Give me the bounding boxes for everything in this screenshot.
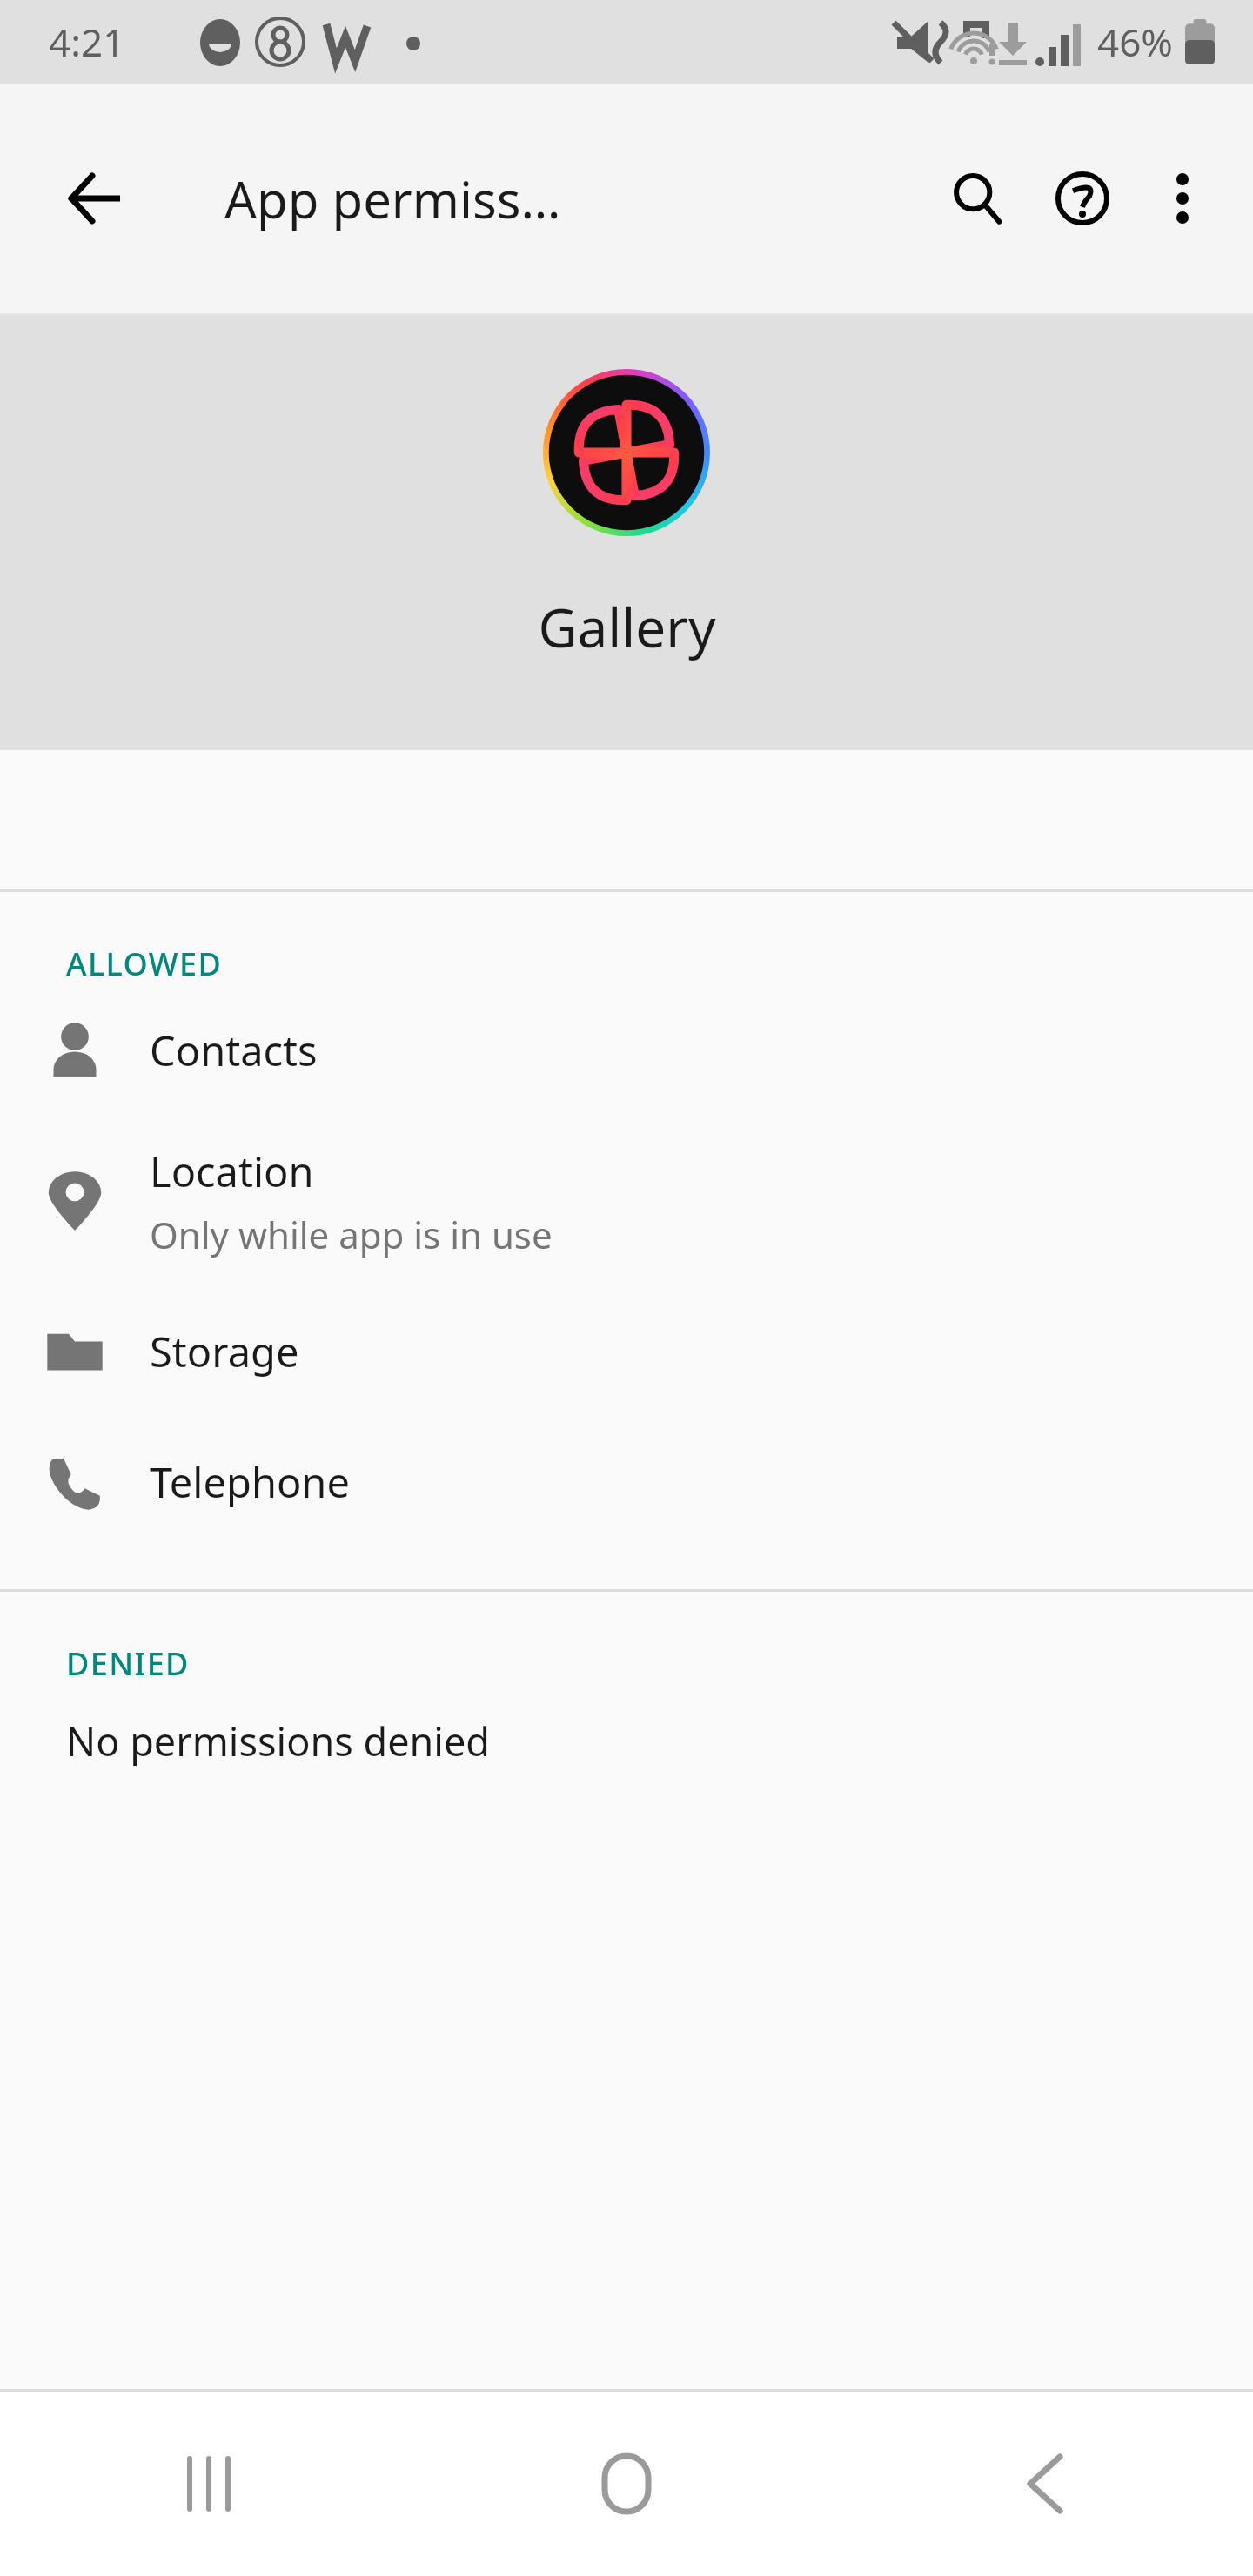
staticText: App permiss… xyxy=(224,164,561,233)
button[interactable]: Search xyxy=(926,146,1030,251)
button[interactable]: Home xyxy=(418,2392,835,2576)
staticText: Location xyxy=(150,1144,314,1199)
staticText: Contacts xyxy=(150,1023,318,1078)
button[interactable]: Telephone xyxy=(0,1417,1253,1547)
staticText: Gallery xyxy=(538,590,716,663)
button[interactable]: Recents xyxy=(0,2392,418,2576)
staticText: ALLOWED xyxy=(66,943,223,985)
button[interactable]: More options xyxy=(1135,151,1230,246)
staticText: DENIED xyxy=(66,1642,190,1685)
button[interactable]: Back xyxy=(47,151,143,246)
staticText: Only while app is in use xyxy=(150,1210,553,1259)
button[interactable]: Location xyxy=(0,1116,1253,1286)
button[interactable]: Storage xyxy=(0,1286,1253,1417)
staticText: Telephone xyxy=(150,1454,350,1510)
staticText: 4:21 xyxy=(49,16,125,68)
button[interactable]: Help xyxy=(1030,146,1135,251)
staticText: Storage xyxy=(150,1324,299,1379)
staticText: 46% xyxy=(1097,16,1173,68)
button[interactable]: Contacts xyxy=(0,985,1253,1116)
button[interactable]: Back xyxy=(835,2392,1253,2576)
staticText: No permissions denied xyxy=(66,1714,490,1768)
